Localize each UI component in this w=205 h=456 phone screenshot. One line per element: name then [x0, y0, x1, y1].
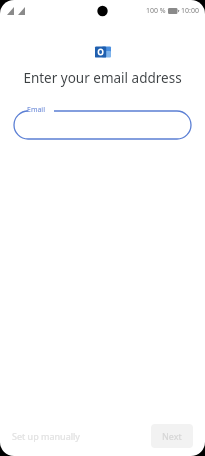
other: Outlook: [95, 45, 111, 59]
staticText: Set up manually: [12, 430, 80, 442]
button[interactable]: Set up manually: [10, 425, 82, 447]
staticText: 10:00: [181, 6, 199, 16]
staticText: Next: [162, 430, 182, 442]
button[interactable]: Email: [14, 105, 191, 139]
staticText: Email: [27, 105, 45, 115]
staticText: Enter your email address: [23, 69, 182, 87]
button[interactable]: Next: [151, 424, 193, 448]
staticText: 100 %: [146, 6, 166, 16]
